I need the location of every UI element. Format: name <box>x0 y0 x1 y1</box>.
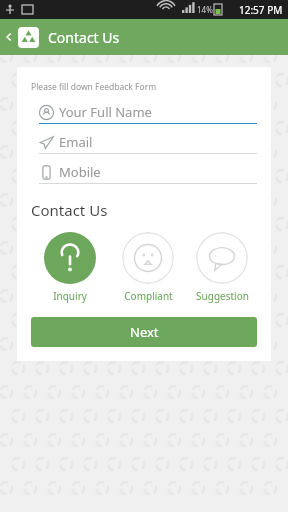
button[interactable]: Suggestion <box>187 232 257 303</box>
button[interactable]: Next <box>31 317 257 347</box>
button[interactable]: Back <box>0 19 18 55</box>
staticText: Please fill down Feedback Form <box>31 81 157 93</box>
button[interactable]: Compliant <box>109 232 187 303</box>
button[interactable]: Inquiry <box>31 232 109 303</box>
staticText: Suggestion <box>196 289 249 303</box>
button[interactable]: Email <box>39 131 257 154</box>
staticText: Contact Us <box>31 200 108 220</box>
staticText: Next <box>130 323 159 341</box>
button[interactable]: Your Full Name <box>39 101 257 124</box>
staticText: Contact Us <box>48 28 120 47</box>
staticText: Inquiry <box>53 289 87 303</box>
staticText: Your Full Name <box>59 103 152 121</box>
button[interactable]: Mobile <box>39 161 257 184</box>
staticText: Mobile <box>59 163 101 181</box>
staticText: Email <box>59 133 93 151</box>
staticText: 12:57 PM <box>239 3 283 17</box>
staticText: Compliant <box>124 289 173 303</box>
staticText: 14% <box>197 4 213 15</box>
